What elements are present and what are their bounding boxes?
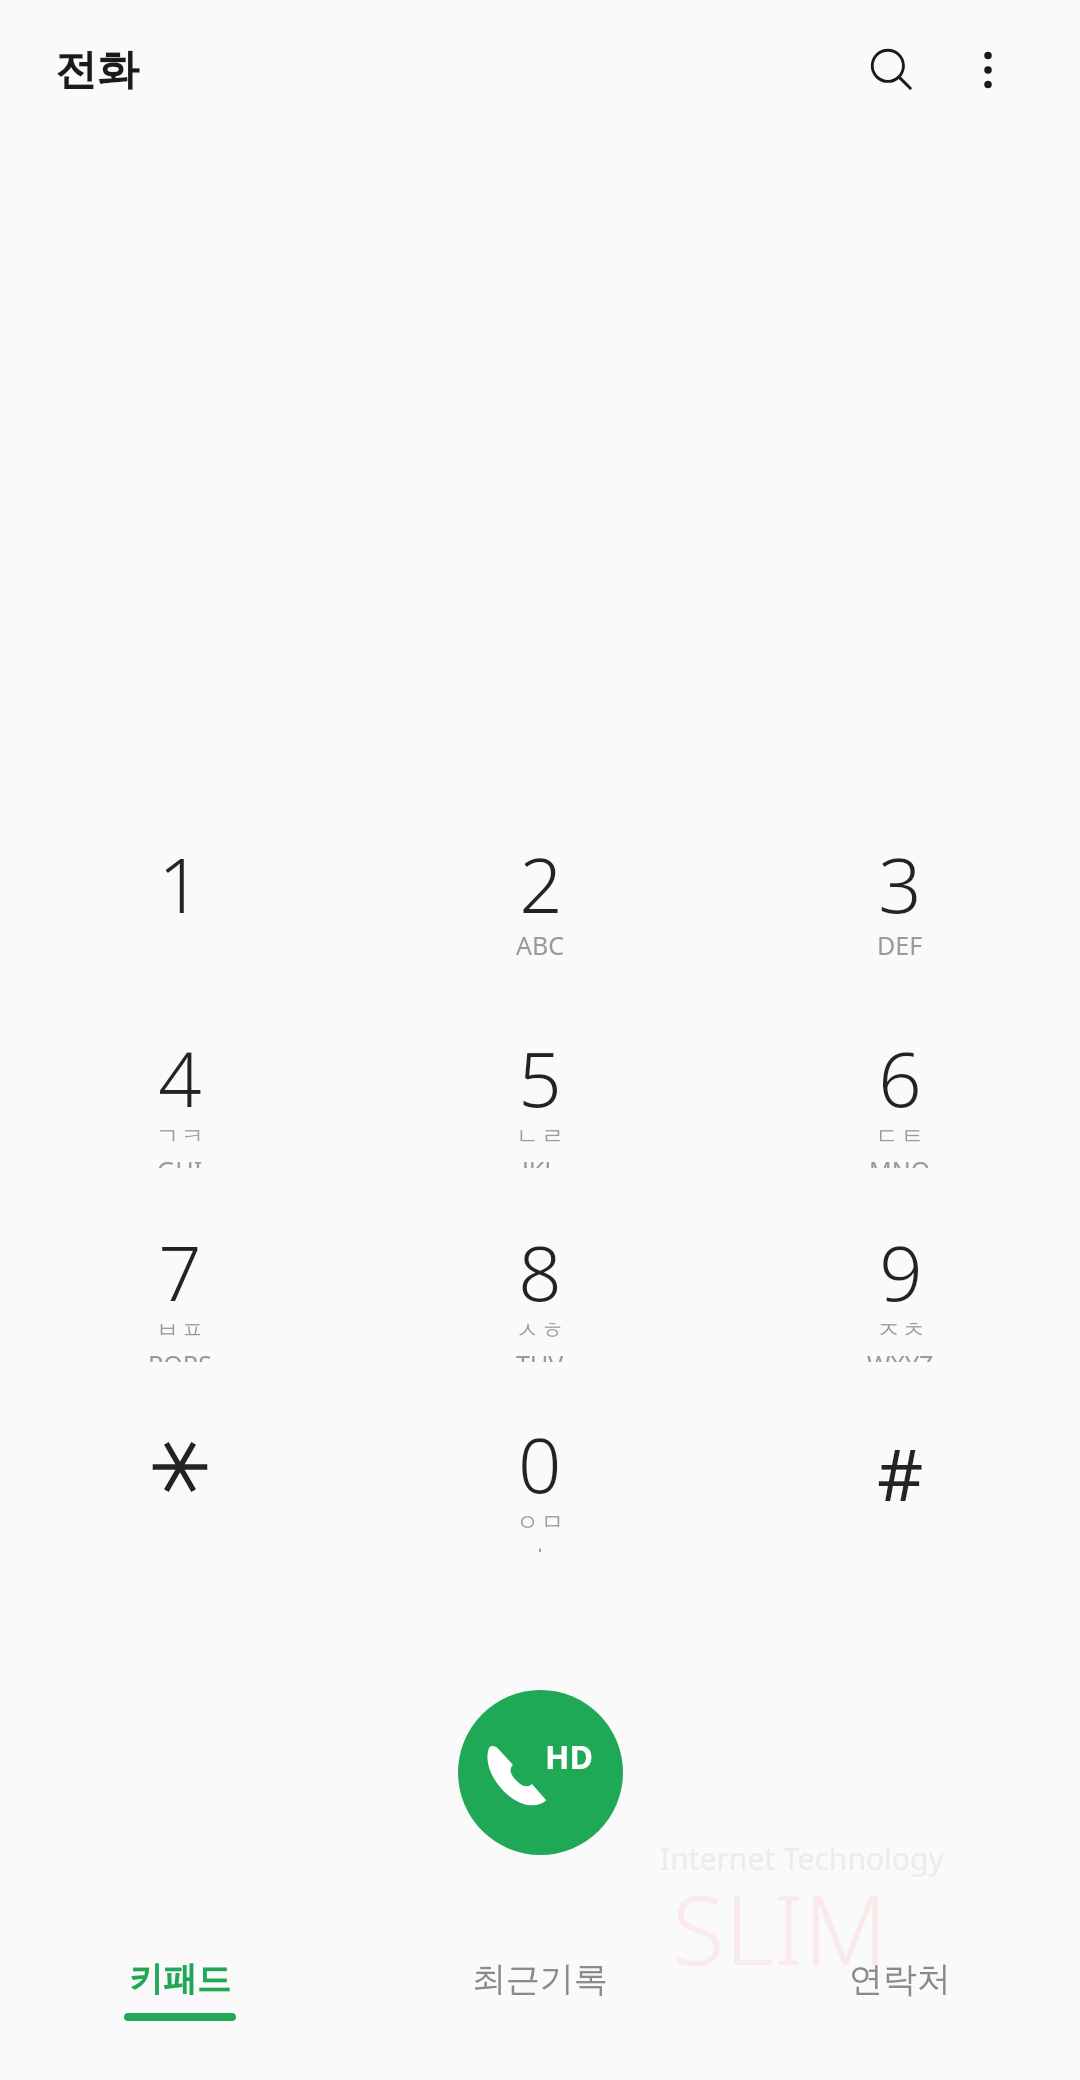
button[interactable]: 1 (0, 832, 360, 980)
staticText: 8 (518, 1220, 562, 1324)
staticText: MNO (869, 1153, 931, 1168)
button[interactable]: Search (844, 22, 940, 118)
staticText: 5 (518, 1026, 562, 1130)
button[interactable]: 0 (360, 1412, 720, 1560)
button[interactable]: 8 (360, 1220, 720, 1368)
staticText: ㄱㅋ (155, 1122, 205, 1151)
staticText: TUV (516, 1347, 564, 1362)
staticText: ㅅㅎ (515, 1316, 565, 1345)
staticText: ㄷㅌ (875, 1122, 925, 1151)
button[interactable]: 3 (720, 832, 1080, 980)
staticText: ㅇㅁ (515, 1508, 565, 1537)
staticText: 3 (878, 832, 922, 936)
button[interactable]: 9 (720, 1220, 1080, 1368)
staticText: ㅈㅊ (876, 1316, 926, 1345)
staticText: 0 (518, 1412, 562, 1516)
staticText: 7 (158, 1220, 202, 1324)
staticText: # (877, 1424, 924, 1522)
staticText: 최근기록 (472, 1958, 608, 2001)
button[interactable]: Pound (720, 1412, 1080, 1560)
staticText: SLIM (672, 1862, 888, 1993)
button[interactable]: 7 (0, 1220, 360, 1368)
staticText: ㅂㅍ (155, 1316, 205, 1345)
button[interactable]: 5 (360, 1026, 720, 1174)
button[interactable]: 2 (360, 832, 720, 980)
staticText: Internet Technology (660, 1838, 944, 1879)
staticText: 연락처 (849, 1958, 951, 2001)
staticText: HD (545, 1735, 593, 1779)
other: Star (149, 1436, 211, 1498)
staticText: JKL (522, 1153, 558, 1168)
button[interactable]: 키패드 (0, 1940, 360, 2080)
staticText: PQRS (148, 1347, 212, 1362)
staticText: GHI (157, 1153, 203, 1168)
button[interactable]: Star (0, 1412, 360, 1560)
staticText: ㄴㄹ (515, 1122, 565, 1151)
button[interactable]: Call HD (458, 1690, 623, 1855)
button[interactable]: 연락처 (720, 1940, 1080, 2080)
button[interactable]: More options (940, 22, 1036, 118)
button[interactable]: 4 (0, 1026, 360, 1174)
button[interactable]: 6 (720, 1026, 1080, 1174)
staticText: + (533, 1537, 548, 1552)
staticText: 4 (158, 1026, 202, 1130)
staticText: 키패드 (129, 1958, 231, 2001)
staticText: 6 (878, 1026, 922, 1130)
staticText: DEF (877, 928, 923, 962)
other: Pound (877, 1424, 924, 1522)
staticText: 2 (519, 832, 563, 936)
button[interactable]: 최근기록 (360, 1940, 720, 2080)
staticText: 1 (158, 832, 202, 936)
staticText: 전화 (55, 44, 139, 97)
staticText: 9 (879, 1220, 923, 1324)
staticText: WXYZ (867, 1347, 934, 1362)
staticText: ABC (516, 928, 565, 962)
